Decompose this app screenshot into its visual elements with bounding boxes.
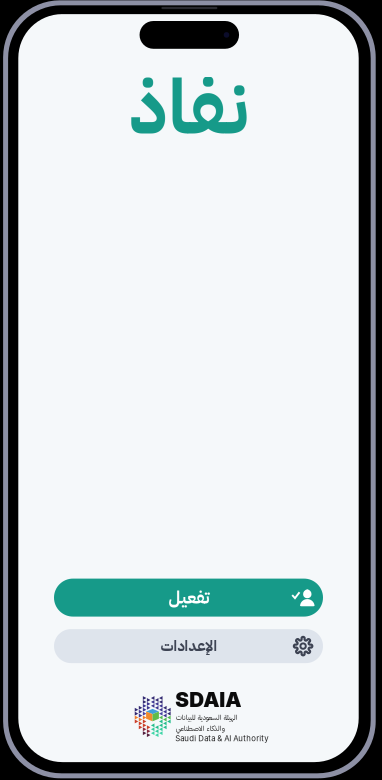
staticText: SDAIA [175, 687, 241, 712]
button[interactable]: الإعدادات [54, 629, 323, 663]
staticText: تفعيل [168, 585, 209, 611]
staticText: الإعدادات [160, 635, 217, 657]
staticText: Saudi Data & AI Authority [175, 734, 268, 743]
button[interactable]: تفعيل [54, 579, 323, 617]
staticText: والذكاء الاصطناعي [175, 723, 224, 734]
staticText: نفاذ [128, 51, 248, 165]
staticText: الهيئة السعودية للبيانات [175, 712, 237, 723]
